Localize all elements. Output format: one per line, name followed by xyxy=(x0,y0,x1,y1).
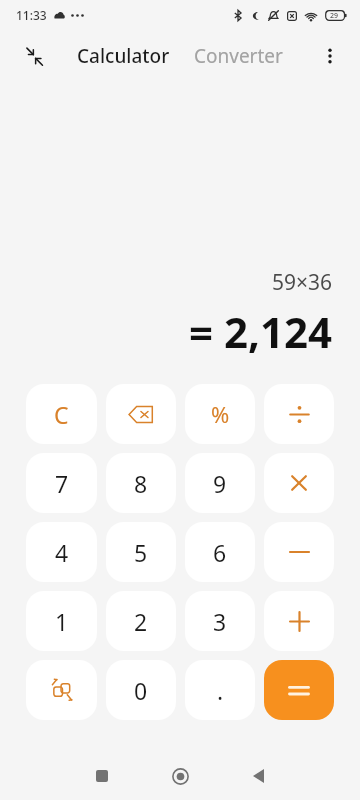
staticText: 1 xyxy=(55,606,69,637)
button[interactable]: Multiply xyxy=(264,453,334,513)
button[interactable]: Minus xyxy=(264,522,334,582)
button[interactable]: Calculator xyxy=(72,38,175,74)
button[interactable]: Percent xyxy=(185,384,255,444)
staticText: 6 xyxy=(213,537,227,568)
button[interactable]: More options xyxy=(310,36,350,76)
staticText: 0 xyxy=(134,675,148,706)
staticText: 5 xyxy=(134,537,148,568)
staticText: Calculator xyxy=(77,43,170,69)
staticText: 8 xyxy=(134,468,148,499)
button[interactable]: 1 xyxy=(26,591,97,651)
button[interactable]: 9 xyxy=(185,453,255,513)
button[interactable]: 0 xyxy=(106,660,176,720)
staticText: 2 xyxy=(134,606,148,637)
staticText: 29 xyxy=(330,11,339,21)
button[interactable]: 7 xyxy=(26,453,97,513)
button[interactable]: Divide xyxy=(264,384,334,444)
staticText: Converter xyxy=(194,43,283,69)
button[interactable]: 8 xyxy=(106,453,176,513)
staticText: % xyxy=(211,399,230,429)
staticText: 7 xyxy=(55,468,69,499)
staticText: 9 xyxy=(213,468,227,499)
button[interactable]: Clear xyxy=(26,384,97,444)
staticText: 11:33 xyxy=(16,7,47,23)
button[interactable]: Home xyxy=(156,752,204,800)
button[interactable]: Recents xyxy=(78,752,126,800)
button[interactable]: 5 xyxy=(106,522,176,582)
button[interactable]: Scientific functions xyxy=(26,660,97,720)
button[interactable]: 4 xyxy=(26,522,97,582)
staticText: 59×36 xyxy=(272,268,333,297)
button[interactable]: Converter xyxy=(189,38,288,74)
staticText: C xyxy=(54,399,69,430)
button[interactable]: Backspace xyxy=(106,384,176,444)
button[interactable]: 3 xyxy=(185,591,255,651)
staticText: = 2,124 xyxy=(189,303,333,360)
staticText: . xyxy=(217,675,224,706)
button[interactable]: 6 xyxy=(185,522,255,582)
staticText: 4 xyxy=(55,537,69,568)
button[interactable]: Equals xyxy=(264,660,334,720)
button[interactable]: 2 xyxy=(106,591,176,651)
button[interactable]: . xyxy=(185,660,255,720)
button[interactable]: Plus xyxy=(264,591,334,651)
button[interactable]: Collapse xyxy=(14,36,54,76)
staticText: 3 xyxy=(213,606,227,637)
button[interactable]: Back xyxy=(234,752,282,800)
